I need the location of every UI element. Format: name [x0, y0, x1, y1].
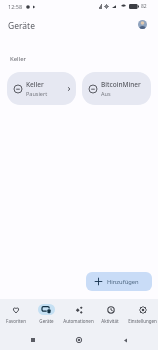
staticText: Geräte [8, 20, 35, 32]
button[interactable]: Home [56, 330, 102, 350]
staticText: 12:58 [8, 3, 23, 10]
button[interactable]: Hinzufügen [86, 272, 152, 291]
button[interactable]: BitcoinMiner [82, 72, 151, 105]
button[interactable]: Recents [10, 330, 56, 350]
staticText: Automationen [63, 318, 94, 324]
button[interactable]: Aktivität [94, 299, 126, 324]
staticText: Favoriten [6, 318, 26, 324]
staticText: Keller [10, 55, 27, 63]
staticText: Einstellungen [128, 318, 157, 324]
button[interactable]: Account [138, 20, 147, 29]
button[interactable]: Back [102, 330, 148, 350]
staticText: Keller [26, 80, 44, 89]
button[interactable]: Geräte [31, 299, 62, 324]
staticText: Pausiert [26, 90, 48, 97]
button[interactable]: Keller [7, 72, 76, 105]
button[interactable]: Favoriten [0, 299, 31, 324]
staticText: BitcoinMiner [101, 80, 141, 89]
staticText: Aus [101, 90, 111, 97]
staticText: Hinzufügen [107, 278, 139, 286]
button[interactable]: Automationen [62, 299, 94, 324]
staticText: Aktivität [101, 318, 119, 324]
button[interactable]: Einstellungen [126, 299, 158, 324]
staticText: Geräte [39, 318, 54, 324]
staticText: 82 [141, 3, 147, 10]
